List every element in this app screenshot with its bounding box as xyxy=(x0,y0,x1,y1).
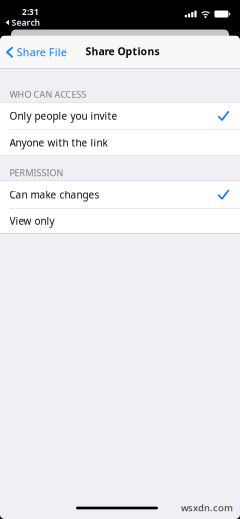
staticText: Can make changes xyxy=(9,188,99,201)
button[interactable]: View only xyxy=(0,209,240,234)
staticText: Anyone with the link xyxy=(9,136,107,149)
staticText: 2:31 xyxy=(22,6,39,17)
staticText: Only people you invite xyxy=(9,109,117,123)
staticText: WHO CAN ACCESS xyxy=(9,88,86,100)
staticText: Share File xyxy=(17,45,67,59)
staticText: Search xyxy=(11,17,39,28)
staticText: View only xyxy=(9,214,54,228)
staticText: PERMISSION xyxy=(9,167,63,179)
staticText: wsxdn.com xyxy=(181,501,233,514)
button[interactable]: Anyone with the link xyxy=(0,130,240,156)
staticText: Share Options xyxy=(85,44,159,58)
button[interactable]: Share File xyxy=(0,39,74,65)
button[interactable]: Search xyxy=(1,15,43,30)
button[interactable]: Can make changes xyxy=(0,181,240,209)
button[interactable]: Only people you invite xyxy=(0,103,240,130)
